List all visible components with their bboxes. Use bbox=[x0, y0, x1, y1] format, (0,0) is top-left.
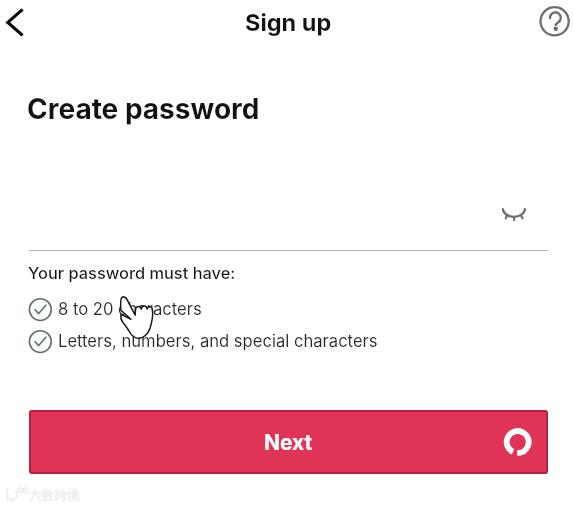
button[interactable]: Help bbox=[532, 0, 574, 44]
button[interactable]: Show password bbox=[496, 194, 532, 230]
button[interactable]: Back bbox=[0, 0, 38, 45]
staticText: 8 to 20 characters bbox=[58, 299, 202, 319]
staticText: Letters, numbers, and special characters bbox=[58, 331, 378, 351]
staticText: Sign up bbox=[245, 8, 332, 36]
staticText: 六数跨境 bbox=[29, 488, 80, 504]
button[interactable]: Next bbox=[29, 410, 548, 474]
staticText: Your password must have: bbox=[28, 263, 236, 283]
staticText: Create password bbox=[27, 92, 260, 126]
staticText: Next bbox=[264, 430, 313, 455]
